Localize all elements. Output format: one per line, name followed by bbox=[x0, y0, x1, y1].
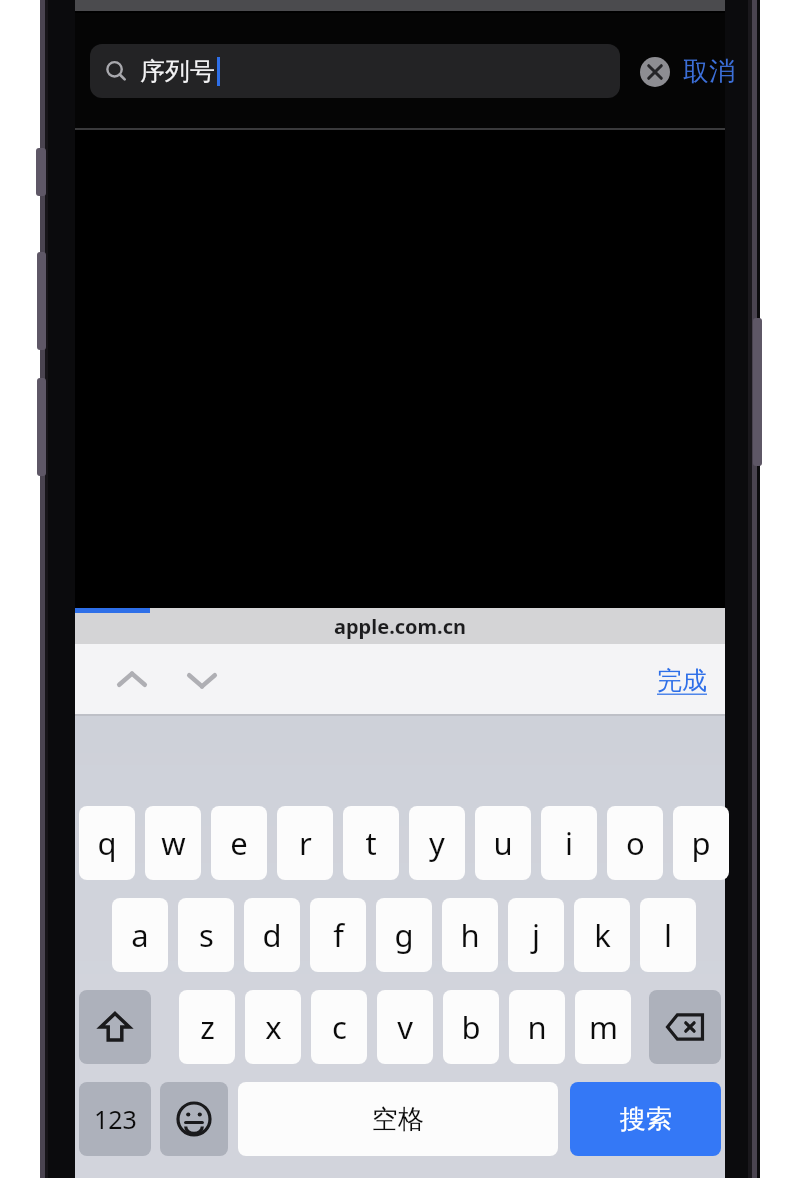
staticText: b bbox=[461, 1006, 481, 1048]
staticText: 123 bbox=[94, 1102, 137, 1136]
button[interactable]: 空格 bbox=[238, 1082, 558, 1156]
staticText: 搜索 bbox=[620, 1103, 672, 1136]
button[interactable]: y bbox=[409, 806, 465, 880]
button[interactable]: Shift bbox=[79, 990, 151, 1064]
staticText: g bbox=[394, 914, 414, 956]
staticText: 序列号 bbox=[140, 56, 215, 87]
button[interactable]: x bbox=[245, 990, 301, 1064]
button[interactable]: l bbox=[640, 898, 696, 972]
staticText: a bbox=[131, 914, 149, 956]
staticText: d bbox=[262, 914, 282, 956]
button[interactable]: f bbox=[310, 898, 366, 972]
staticText: v bbox=[397, 1006, 413, 1048]
button[interactable]: m bbox=[575, 990, 631, 1064]
button[interactable]: o bbox=[607, 806, 663, 880]
staticText: t bbox=[365, 822, 377, 864]
button[interactable]: b bbox=[443, 990, 499, 1064]
staticText: x bbox=[265, 1006, 282, 1048]
staticText: r bbox=[299, 822, 312, 864]
button[interactable]: n bbox=[509, 990, 565, 1064]
button[interactable]: r bbox=[277, 806, 333, 880]
button[interactable]: 搜索 bbox=[570, 1082, 721, 1156]
button[interactable]: 取消 bbox=[683, 33, 735, 109]
button[interactable]: Next field bbox=[167, 644, 237, 716]
button[interactable]: 123 bbox=[79, 1082, 151, 1156]
staticText: u bbox=[493, 822, 513, 864]
button[interactable]: z bbox=[179, 990, 235, 1064]
staticText: m bbox=[589, 1006, 618, 1048]
button[interactable]: Previous field bbox=[97, 644, 167, 716]
staticText: o bbox=[626, 822, 645, 864]
button[interactable]: w bbox=[145, 806, 201, 880]
staticText: f bbox=[333, 914, 344, 956]
button[interactable]: p bbox=[673, 806, 729, 880]
button[interactable]: u bbox=[475, 806, 531, 880]
button[interactable]: h bbox=[442, 898, 498, 972]
staticText: 空格 bbox=[372, 1103, 424, 1136]
staticText: j bbox=[532, 914, 540, 956]
button[interactable]: 完成 bbox=[657, 644, 707, 716]
button[interactable]: Clear search bbox=[640, 57, 670, 87]
staticText: e bbox=[230, 822, 248, 864]
button[interactable]: v bbox=[377, 990, 433, 1064]
staticText: p bbox=[691, 822, 711, 864]
button[interactable]: 序列号 bbox=[90, 44, 620, 98]
staticText: z bbox=[200, 1006, 215, 1048]
staticText: s bbox=[199, 914, 214, 956]
staticText: w bbox=[161, 822, 186, 864]
button[interactable]: i bbox=[541, 806, 597, 880]
staticText: k bbox=[594, 914, 611, 956]
staticText: c bbox=[332, 1006, 347, 1048]
staticText: h bbox=[460, 914, 480, 956]
staticText: 完成 bbox=[657, 665, 707, 696]
button[interactable]: g bbox=[376, 898, 432, 972]
staticText: y bbox=[429, 822, 445, 864]
button[interactable]: j bbox=[508, 898, 564, 972]
staticText: apple.com.cn bbox=[334, 613, 467, 640]
button[interactable]: t bbox=[343, 806, 399, 880]
staticText: l bbox=[664, 914, 672, 956]
button[interactable]: c bbox=[311, 990, 367, 1064]
button[interactable]: d bbox=[244, 898, 300, 972]
button[interactable]: k bbox=[574, 898, 630, 972]
staticText: i bbox=[565, 822, 573, 864]
button[interactable]: Emoji bbox=[160, 1082, 228, 1156]
button[interactable]: q bbox=[79, 806, 135, 880]
button[interactable]: s bbox=[178, 898, 234, 972]
button[interactable]: e bbox=[211, 806, 267, 880]
staticText: q bbox=[97, 822, 117, 864]
button[interactable]: a bbox=[112, 898, 168, 972]
staticText: n bbox=[527, 1006, 547, 1048]
staticText: 取消 bbox=[683, 55, 735, 88]
button[interactable]: Backspace bbox=[649, 990, 721, 1064]
